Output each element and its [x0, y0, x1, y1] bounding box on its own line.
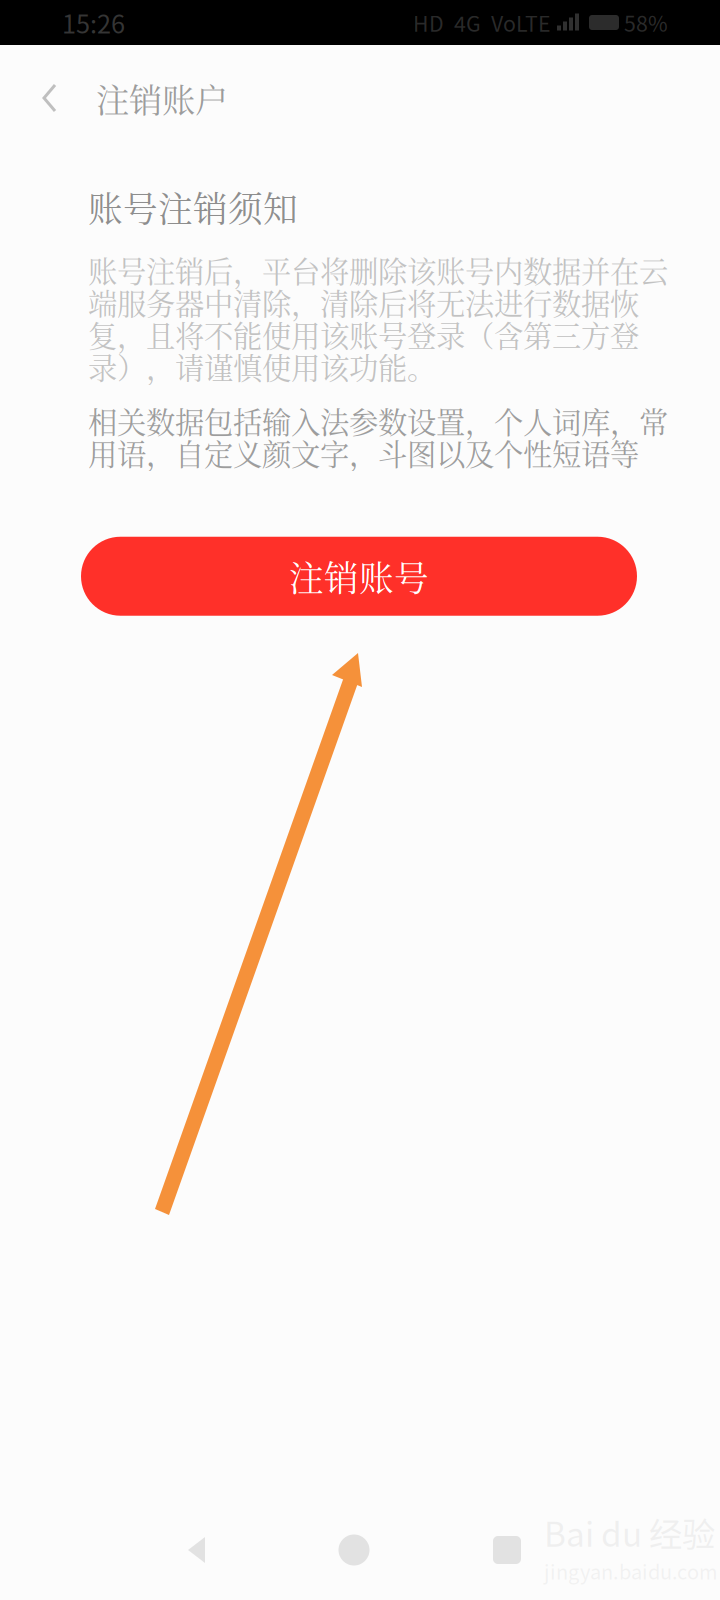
button[interactable]: Home — [318, 1514, 390, 1586]
staticText: 相关数据包括输入法参数设置，个人词库，常用语，自定义颜文字，斗图以及个性短语等 — [88, 399, 668, 474]
staticText: 账号注销须知 — [88, 182, 298, 232]
staticText: Bai du 经验 — [544, 1508, 715, 1556]
staticText: 注销账号 — [289, 551, 429, 601]
staticText: 注销账户 — [96, 74, 228, 122]
button[interactable]: Back — [162, 1514, 234, 1586]
staticText: 15:26 — [62, 4, 125, 41]
staticText: HD 4G VoLTE — [413, 7, 551, 38]
staticText: jingyan.baidu.com — [544, 1556, 718, 1585]
button[interactable]: Back — [20, 67, 78, 129]
button[interactable]: Recents — [471, 1514, 543, 1586]
staticText: 58% — [624, 7, 668, 38]
staticText: 账号注销后，平台将删除该账号内数据并在云端服务器中清除，清除后将无法进行数据恢复… — [88, 249, 668, 387]
button[interactable]: 注销账号 — [81, 537, 637, 616]
